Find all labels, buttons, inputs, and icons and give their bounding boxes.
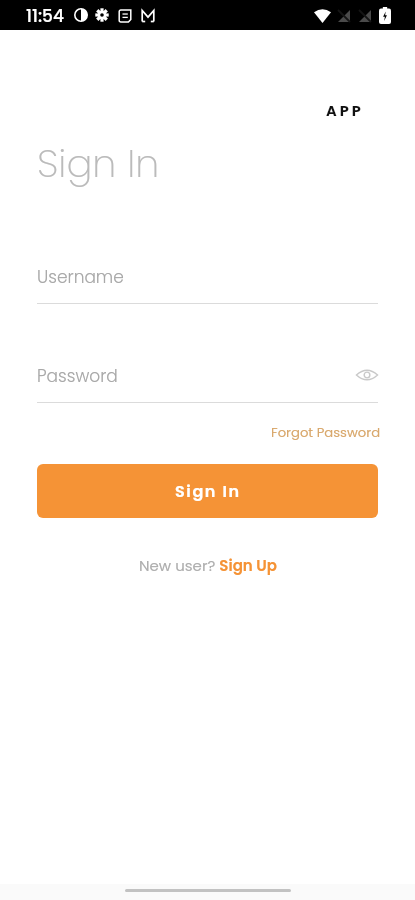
button[interactable]: APP — [322, 99, 368, 123]
button[interactable]: Username — [37, 258, 378, 304]
staticText: Sign In — [175, 480, 241, 502]
staticText: APP — [326, 101, 364, 121]
staticText: Forgot Password — [271, 423, 381, 441]
staticText: Sign In — [37, 137, 160, 191]
button[interactable]: Sign In — [37, 464, 378, 518]
staticText: Username — [37, 265, 124, 289]
button[interactable]: Forgot Password — [267, 421, 385, 443]
button[interactable]: Password — [37, 357, 378, 403]
staticText: Password — [37, 364, 118, 388]
staticText: New user? Sign Up — [139, 555, 277, 576]
staticText: 11:54 — [26, 4, 64, 28]
button[interactable]: Show password — [355, 363, 379, 387]
button[interactable]: New user? Sign Up — [133, 552, 283, 579]
